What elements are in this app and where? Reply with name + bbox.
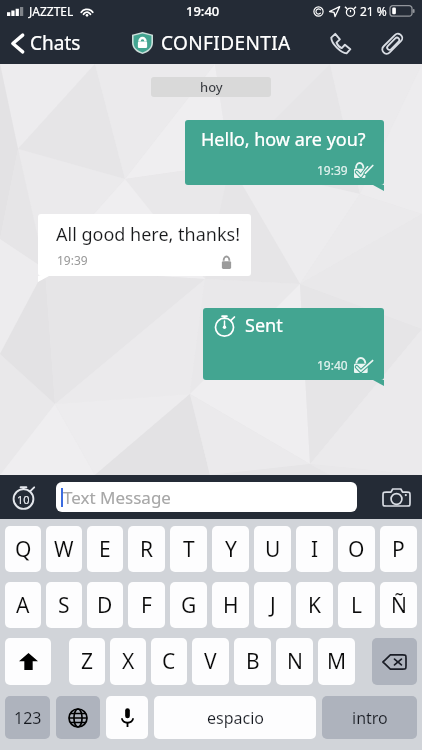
staticText: 19:40 bbox=[186, 2, 220, 20]
staticText: K bbox=[308, 591, 321, 620]
button[interactable]: D bbox=[87, 582, 123, 628]
button[interactable]: Camera bbox=[376, 477, 416, 517]
button[interactable]: Backspace bbox=[372, 638, 417, 685]
button[interactable]: Sent bbox=[203, 308, 384, 380]
staticText: Text Message bbox=[63, 486, 171, 509]
staticText: Y bbox=[225, 535, 237, 564]
staticText: 123 bbox=[14, 707, 42, 729]
staticText: 10 bbox=[17, 492, 30, 507]
staticText: T bbox=[183, 535, 195, 564]
button[interactable]: L bbox=[338, 582, 375, 628]
button[interactable]: E bbox=[87, 526, 123, 572]
button[interactable]: 123 bbox=[5, 696, 50, 739]
button[interactable]: M bbox=[318, 638, 355, 685]
staticText: B bbox=[246, 647, 260, 676]
button[interactable]: J bbox=[254, 582, 291, 628]
button[interactable]: I bbox=[296, 526, 333, 572]
button[interactable]: Attach file bbox=[374, 25, 410, 61]
staticText: F bbox=[141, 591, 152, 620]
button[interactable]: Q bbox=[5, 526, 41, 572]
staticText: I bbox=[311, 535, 319, 564]
staticText: Chats bbox=[30, 30, 81, 56]
staticText: 19:40 bbox=[317, 357, 348, 373]
button[interactable]: Dictate bbox=[106, 696, 148, 739]
button[interactable]: W bbox=[46, 526, 82, 572]
button[interactable]: G bbox=[170, 582, 207, 628]
button[interactable]: Text Message bbox=[56, 482, 357, 512]
button[interactable]: Y bbox=[212, 526, 249, 572]
button[interactable]: T bbox=[170, 526, 207, 572]
button[interactable]: Call bbox=[322, 25, 358, 61]
button[interactable]: espacio bbox=[154, 696, 316, 739]
staticText: S bbox=[58, 591, 70, 620]
staticText: X bbox=[122, 647, 135, 676]
button[interactable]: Change keyboard language bbox=[56, 696, 100, 739]
button[interactable]: Hello, how are you? bbox=[185, 120, 384, 185]
staticText: 19:39 bbox=[57, 252, 88, 268]
button[interactable]: K bbox=[296, 582, 333, 628]
staticText: Hello, how are you? bbox=[201, 127, 366, 152]
staticText: P bbox=[392, 535, 405, 564]
button[interactable]: Chats bbox=[0, 22, 89, 64]
staticText: JAZZTEL bbox=[29, 3, 74, 19]
staticText: V bbox=[204, 647, 217, 676]
staticText: E bbox=[99, 535, 111, 564]
staticText: H bbox=[223, 591, 239, 620]
staticText: All good here, thanks! bbox=[56, 222, 240, 247]
staticText: Sent bbox=[245, 313, 283, 338]
staticText: U bbox=[265, 535, 281, 564]
staticText: Ñ bbox=[391, 591, 407, 620]
button[interactable]: Ñ bbox=[380, 582, 417, 628]
staticText: 19:39 bbox=[317, 162, 348, 178]
button[interactable]: P bbox=[380, 526, 417, 572]
staticText: N bbox=[287, 647, 303, 676]
button[interactable]: intro bbox=[322, 696, 417, 739]
staticText: M bbox=[327, 647, 347, 676]
button[interactable]: Shift bbox=[5, 638, 51, 685]
button[interactable]: All good here, thanks! bbox=[38, 214, 251, 276]
button[interactable]: F bbox=[128, 582, 165, 628]
button[interactable]: B bbox=[234, 638, 271, 685]
staticText: G bbox=[181, 591, 197, 620]
staticText: CONFIDENTIA bbox=[161, 30, 291, 56]
button[interactable]: N bbox=[276, 638, 313, 685]
staticText: Z bbox=[81, 647, 94, 676]
staticText: R bbox=[140, 535, 154, 564]
staticText: J bbox=[270, 591, 276, 620]
staticText: D bbox=[97, 591, 113, 620]
button[interactable]: U bbox=[254, 526, 291, 572]
button[interactable]: R bbox=[128, 526, 165, 572]
button[interactable]: S bbox=[46, 582, 82, 628]
button[interactable]: V bbox=[192, 638, 229, 685]
staticText: 21 % bbox=[360, 3, 387, 19]
button[interactable]: H bbox=[212, 582, 249, 628]
staticText: W bbox=[54, 535, 74, 564]
button[interactable]: A bbox=[5, 582, 41, 628]
button[interactable]: Self destruct timer bbox=[6, 480, 40, 514]
staticText: intro bbox=[352, 707, 388, 729]
staticText: Q bbox=[15, 535, 32, 564]
staticText: A bbox=[16, 591, 30, 620]
staticText: O bbox=[348, 535, 365, 564]
staticText: espacio bbox=[207, 707, 264, 729]
button[interactable]: O bbox=[338, 526, 375, 572]
button[interactable]: C bbox=[151, 638, 187, 685]
button[interactable]: Z bbox=[69, 638, 105, 685]
staticText: hoy bbox=[200, 78, 223, 96]
staticText: C bbox=[162, 647, 176, 676]
staticText: L bbox=[351, 591, 363, 620]
button[interactable]: X bbox=[110, 638, 146, 685]
